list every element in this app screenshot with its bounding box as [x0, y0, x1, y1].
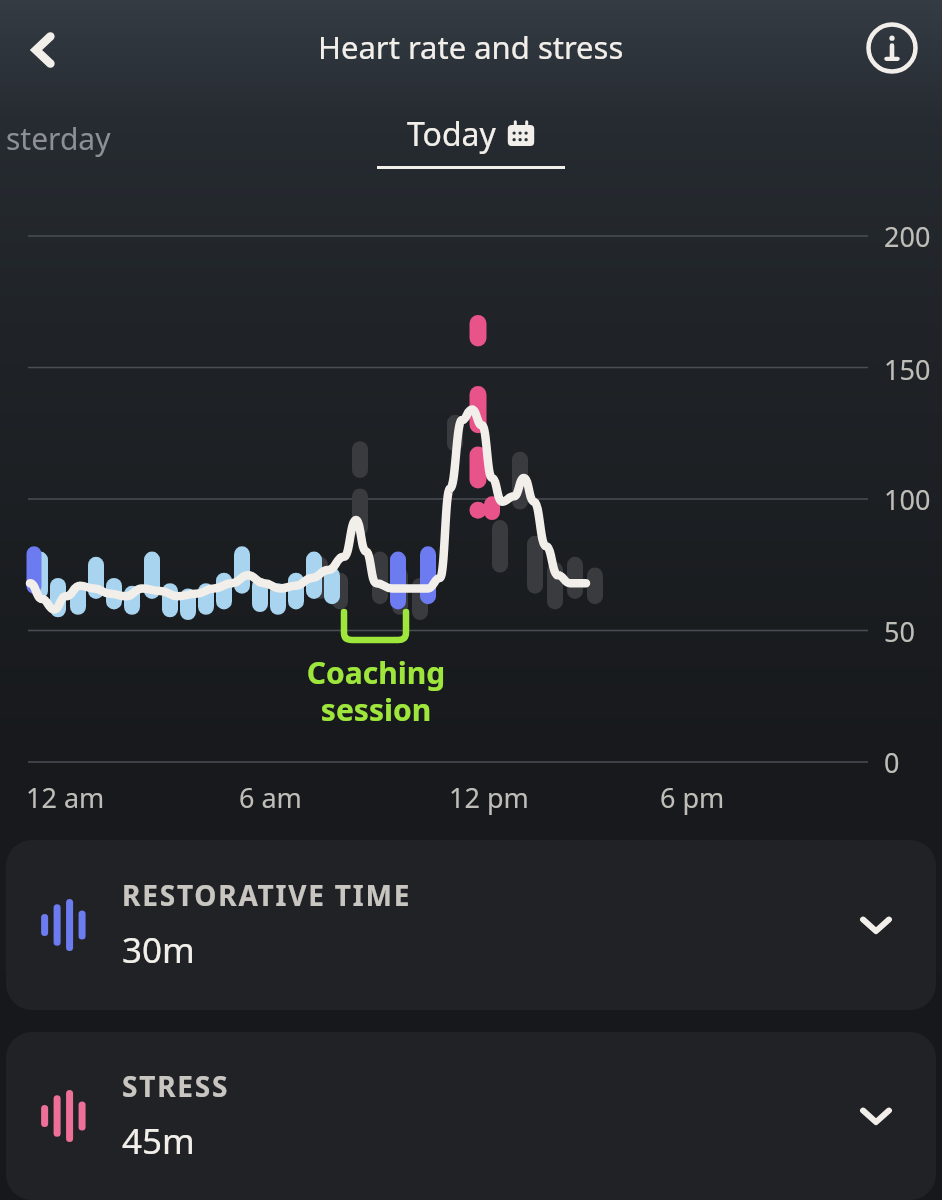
button[interactable]: STRESS [6, 1032, 936, 1200]
staticText: STRESS [122, 1067, 230, 1105]
button[interactable]: Today [377, 112, 565, 169]
staticText: 50 [884, 613, 915, 650]
staticText: Coaching session [300, 652, 452, 730]
staticText: Today [407, 112, 496, 156]
staticText: 45m [122, 1117, 195, 1165]
staticText: 12 am [26, 779, 105, 816]
staticText: RESTORATIVE TIME [122, 876, 412, 914]
staticText: 150 [884, 351, 931, 388]
staticText: Heart rate and stress [318, 26, 624, 68]
staticText: 12 pm [449, 779, 529, 816]
button[interactable]: Expand RESTORATIVE TIME [848, 897, 904, 953]
button[interactable]: Expand STRESS [848, 1088, 904, 1144]
staticText: 100 [884, 481, 931, 518]
staticText: 30m [122, 926, 195, 974]
staticText: 0 [884, 744, 900, 781]
button[interactable]: Back [8, 14, 80, 86]
staticText: 6 pm [660, 779, 725, 816]
staticText: 200 [884, 218, 931, 255]
staticText: 6 am [239, 779, 302, 816]
button[interactable]: RESTORATIVE TIME [6, 840, 936, 1010]
button[interactable]: Information [856, 12, 928, 84]
button[interactable]: sterday [6, 118, 111, 159]
